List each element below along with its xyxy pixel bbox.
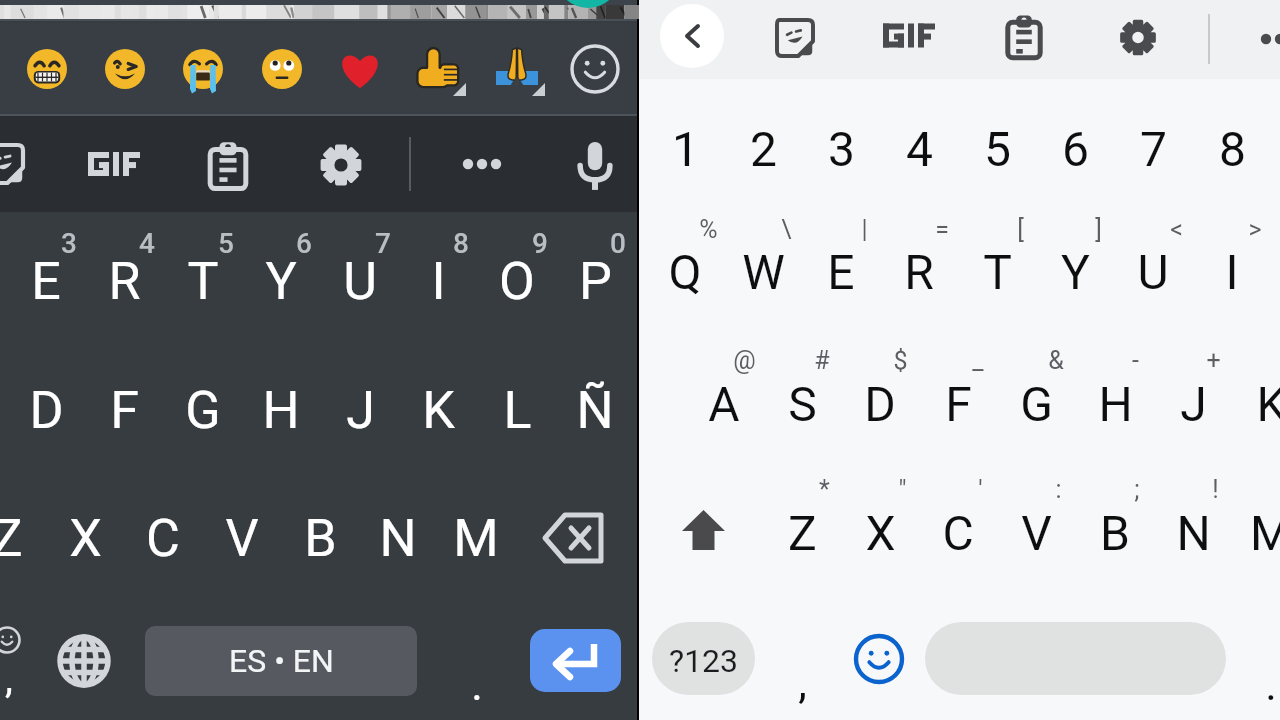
button[interactable]: Emoji [86, 24, 164, 115]
button[interactable]: 3 [802, 93, 880, 203]
button[interactable]: J [321, 346, 399, 474]
button[interactable]: V [203, 478, 281, 598]
staticText: $ [893, 346, 908, 375]
staticText: F [110, 380, 139, 441]
button[interactable]: L [478, 346, 556, 474]
button[interactable]: A [685, 341, 763, 466]
button[interactable]: Emoji [556, 24, 634, 115]
button[interactable]: K [1232, 341, 1280, 466]
button[interactable]: C [919, 472, 997, 592]
staticText: 2 [750, 121, 777, 177]
staticText: M [1250, 505, 1280, 561]
button[interactable]: W [724, 209, 802, 334]
button[interactable]: X [841, 472, 919, 592]
button[interactable]: Y [1036, 209, 1114, 334]
staticText: S [788, 376, 817, 432]
button[interactable]: 4 [880, 93, 958, 203]
button[interactable]: Emoji [8, 24, 86, 115]
button[interactable]: C [124, 478, 202, 598]
button[interactable]: Shift [659, 472, 749, 592]
button[interactable]: T [164, 217, 242, 345]
button[interactable]: Back [660, 4, 724, 68]
button[interactable]: , [763, 609, 841, 709]
button[interactable]: Emoji [840, 609, 918, 709]
staticText: F [945, 376, 972, 432]
staticText: L [503, 380, 532, 441]
button[interactable]: U [1114, 209, 1192, 334]
button[interactable]: . [1241, 609, 1280, 709]
button[interactable]: G [164, 346, 242, 474]
button[interactable]: M [1232, 472, 1280, 592]
button[interactable]: F [85, 346, 163, 474]
button[interactable]: E [802, 209, 880, 334]
button[interactable]: G [997, 341, 1075, 466]
button[interactable]: GIF [66, 116, 162, 212]
button[interactable]: E [7, 217, 85, 345]
button[interactable]: Stickers [747, 0, 843, 79]
button[interactable]: H [242, 346, 320, 474]
staticText: Q [668, 244, 702, 300]
button[interactable]: F [919, 341, 997, 466]
staticText: ] [1095, 215, 1102, 244]
button[interactable]: Stickers [0, 116, 48, 212]
staticText: & [1048, 346, 1064, 375]
button[interactable]: M [437, 478, 515, 598]
button[interactable]: ES • EN [145, 626, 417, 696]
button[interactable]: J [1154, 341, 1232, 466]
staticText: Z [788, 505, 817, 561]
button[interactable]: D [7, 346, 85, 474]
staticText: 5 [984, 121, 1011, 177]
button[interactable]: N [1154, 472, 1232, 592]
button[interactable]: 7 [1114, 93, 1192, 203]
button[interactable]: Clipboard [976, 0, 1072, 79]
button[interactable]: 2 [724, 93, 802, 203]
button[interactable]: B [1076, 472, 1154, 592]
button[interactable]: Voice input [555, 116, 635, 212]
button[interactable]: S [763, 341, 841, 466]
button[interactable]: Z [763, 472, 841, 592]
button[interactable]: Emoji [243, 24, 321, 115]
button[interactable]: R [85, 217, 163, 345]
button[interactable]: Settings [1090, 0, 1186, 79]
button[interactable]: . [438, 611, 516, 711]
button[interactable]: ?123 [652, 622, 755, 695]
button[interactable]: H [1076, 341, 1154, 466]
button[interactable]: 6 [1036, 93, 1114, 203]
staticText: 8 [1219, 121, 1246, 177]
button[interactable]: 8 [1193, 93, 1271, 203]
button[interactable]: Q [646, 209, 724, 334]
button[interactable]: , [0, 611, 39, 711]
button[interactable]: R [880, 209, 958, 334]
button[interactable]: K [399, 346, 477, 474]
button[interactable]: 5 [958, 93, 1036, 203]
button[interactable]: More [434, 116, 530, 212]
button[interactable]: O [478, 217, 556, 345]
button[interactable]: 1 [646, 93, 724, 203]
button[interactable]: Backspace [529, 480, 619, 600]
button[interactable]: N [359, 478, 437, 598]
button[interactable]: I [1193, 209, 1271, 334]
button[interactable]: Settings [293, 116, 389, 212]
button[interactable]: P [556, 217, 634, 345]
button[interactable]: T [958, 209, 1036, 334]
button[interactable]: Switch language [44, 611, 124, 711]
button[interactable]: Space [925, 622, 1226, 695]
button[interactable]: Emoji [164, 24, 242, 115]
button[interactable]: D [841, 341, 919, 466]
button[interactable]: GIF [861, 0, 957, 79]
button[interactable]: I [399, 217, 477, 345]
button[interactable]: Ñ [556, 346, 634, 474]
button[interactable]: Z [0, 478, 46, 598]
button[interactable]: Emoji [399, 24, 477, 115]
staticText: C [942, 505, 974, 561]
button[interactable]: Emoji [478, 24, 556, 115]
button[interactable]: More [1242, 0, 1280, 79]
button[interactable]: Y [242, 217, 320, 345]
button[interactable]: Enter [530, 629, 621, 692]
button[interactable]: B [281, 478, 359, 598]
button[interactable]: U [321, 217, 399, 345]
button[interactable]: V [997, 472, 1075, 592]
button[interactable]: Emoji [321, 24, 399, 115]
button[interactable]: X [46, 478, 124, 598]
button[interactable]: Clipboard [179, 116, 275, 212]
